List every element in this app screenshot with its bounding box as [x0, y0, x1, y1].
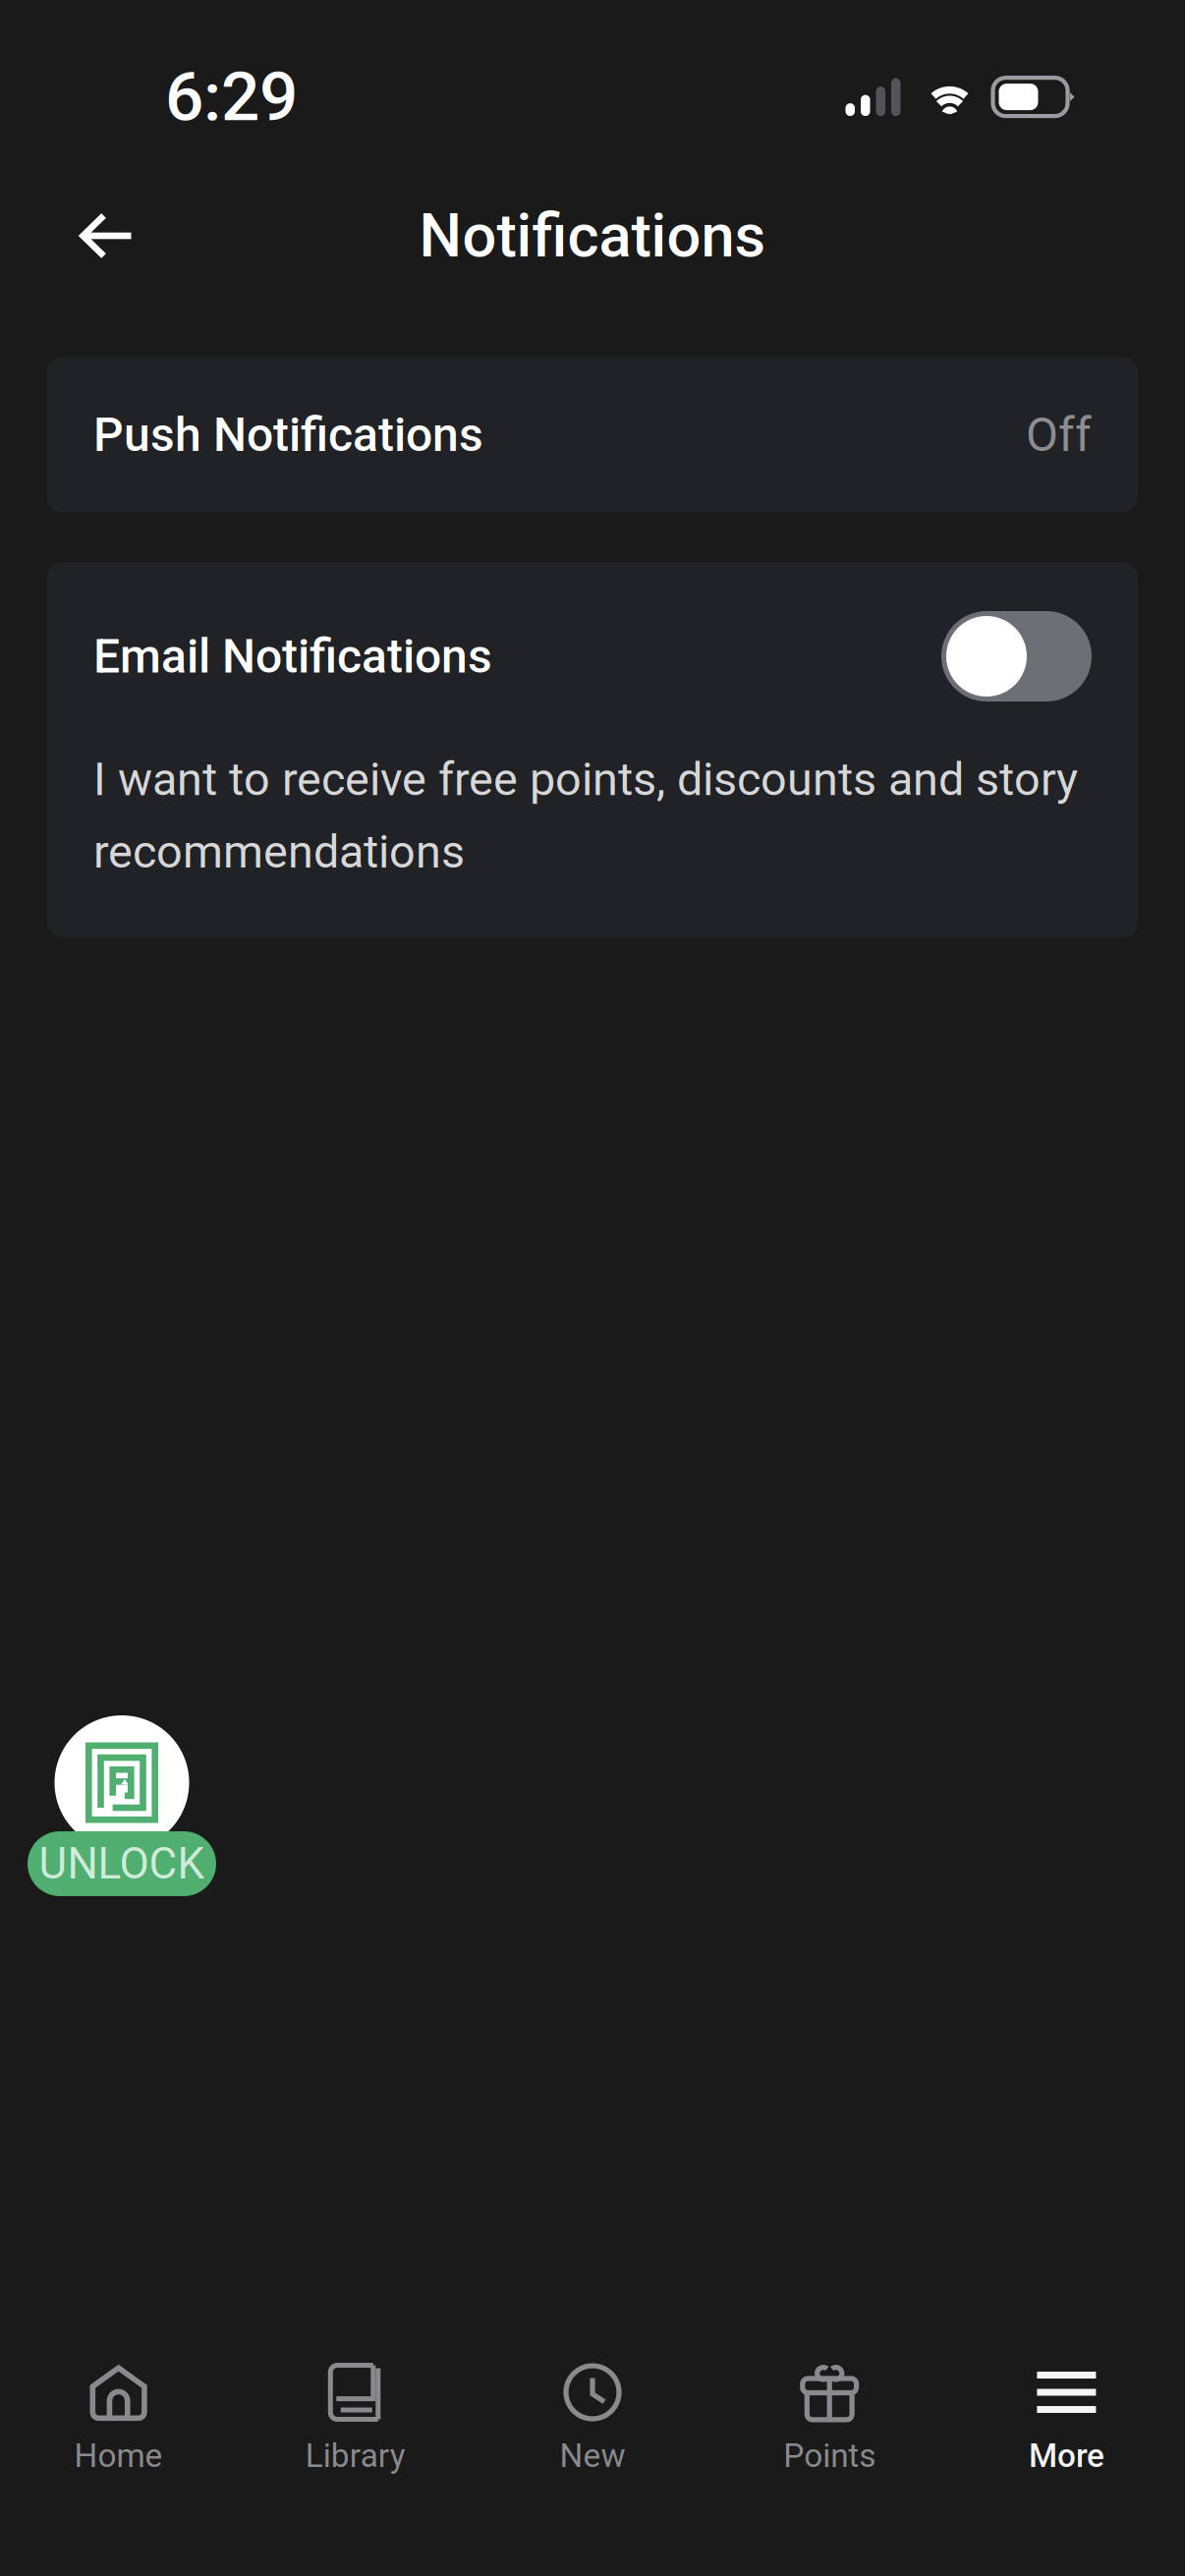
button[interactable]: Points — [711, 2362, 948, 2475]
staticText: Off — [1026, 407, 1092, 462]
button[interactable]: More — [948, 2362, 1185, 2475]
staticText: 6:29 — [165, 57, 298, 137]
staticText: Library — [305, 2436, 406, 2475]
button[interactable]: Back — [0, 183, 174, 289]
button[interactable]: Push Notifications — [47, 357, 1138, 513]
staticText: UNLOCK — [39, 1838, 205, 1889]
staticText: Push Notifications — [93, 407, 483, 462]
button[interactable]: Library — [237, 2362, 474, 2475]
staticText: Notifications — [419, 201, 766, 271]
button[interactable]: UNLOCK — [28, 1831, 216, 1896]
staticText: Home — [74, 2436, 163, 2475]
staticText: Email Notifications — [93, 629, 492, 684]
button[interactable]: New — [474, 2362, 711, 2475]
staticText: New — [560, 2436, 625, 2475]
staticText: More — [1029, 2436, 1104, 2475]
button[interactable]: Home — [0, 2362, 237, 2475]
staticText: Points — [783, 2436, 876, 2475]
staticText: I want to receive free points, discounts… — [93, 753, 1078, 879]
button[interactable]: Email Notifications — [941, 611, 1092, 701]
